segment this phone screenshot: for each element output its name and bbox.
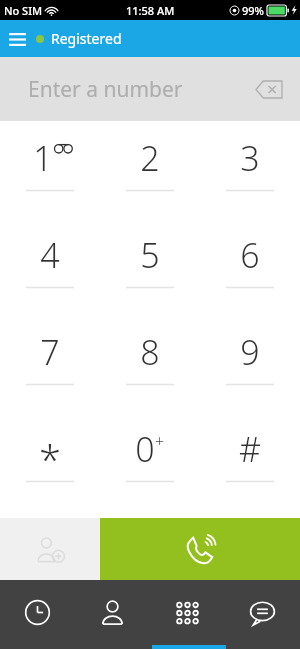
staticText: No SIM <box>4 3 43 18</box>
button[interactable]: 6 <box>200 222 300 319</box>
button[interactable]: Call <box>100 518 300 580</box>
button[interactable]: 9 <box>200 319 300 416</box>
staticText: 0 <box>135 426 155 472</box>
button[interactable]: 3 <box>200 125 300 222</box>
button[interactable]: 2 <box>100 125 200 222</box>
staticText: + <box>155 430 165 452</box>
button[interactable]: 0 <box>100 416 200 513</box>
staticText: Enter a number <box>28 75 183 104</box>
staticText: 2 <box>140 135 160 181</box>
staticText: 99% <box>242 3 264 18</box>
button[interactable]: # <box>200 416 300 513</box>
staticText: # <box>239 426 261 472</box>
button[interactable]: 7 <box>0 319 100 416</box>
button[interactable]: Menu <box>0 22 34 56</box>
button[interactable]: Contacts <box>75 580 150 645</box>
staticText: 11:58 AM <box>126 3 175 18</box>
button[interactable]: Backspace <box>248 68 290 110</box>
staticText: 7 <box>40 329 60 375</box>
button[interactable]: Keypad <box>150 580 225 645</box>
button[interactable]: 1 <box>0 125 100 222</box>
staticText: 4 <box>40 232 60 278</box>
staticText: * <box>39 432 62 478</box>
staticText: 6 <box>240 232 260 278</box>
staticText: Registered <box>51 29 122 48</box>
staticText: 9 <box>240 329 260 375</box>
button[interactable]: History <box>0 580 75 645</box>
staticText: 3 <box>240 135 260 181</box>
button[interactable]: 4 <box>0 222 100 319</box>
button[interactable]: 8 <box>100 319 200 416</box>
button[interactable]: * <box>0 416 100 513</box>
staticText: 8 <box>140 329 160 375</box>
button[interactable]: 5 <box>100 222 200 319</box>
staticText: 1 <box>33 135 53 181</box>
staticText: 5 <box>140 232 160 278</box>
button[interactable]: Messages <box>225 580 300 645</box>
